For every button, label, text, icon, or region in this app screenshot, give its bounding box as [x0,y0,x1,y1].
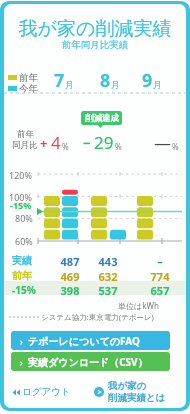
staticText: 実績ダウンロード（CSV） [28,355,148,369]
staticText: 120% [9,169,32,181]
staticText: 前年 [12,269,32,282]
staticText: 同月比 [12,140,38,151]
staticText: 774 [147,269,173,283]
staticText: › [20,356,23,368]
staticText: 4 [51,131,61,154]
button[interactable]: 削減達成 [81,111,122,125]
staticText: 100% [9,191,32,203]
button[interactable]: ログアウト [10,383,73,401]
staticText: 7 [54,68,65,93]
staticText: 469 [57,269,83,283]
staticText: 前年 [19,72,38,82]
staticText: 実績 [12,254,32,267]
staticText: 632 [95,269,121,283]
staticText: – [147,254,173,268]
staticText: -15% [10,199,32,211]
staticText: 削減達成 [85,113,119,124]
button[interactable]: › [11,331,170,350]
staticText: -15% [12,283,36,297]
staticText: 60% [15,235,33,247]
staticText: 月 [65,80,74,91]
staticText: 月 [153,80,162,91]
staticText: 削減実績とは [108,392,166,404]
button[interactable]: › [11,352,170,371]
staticText: 月 [111,80,120,91]
staticText: 398 [57,283,83,297]
staticText: 487 [57,254,83,268]
staticText: 我が家の削減実績 [4,17,186,41]
staticText: + [40,134,48,152]
staticText: % [62,141,69,152]
staticText: − [83,134,91,152]
staticText: システム協力:東京電力(テポーレ) [41,312,154,322]
staticText: 657 [147,283,173,297]
staticText: 443 [95,254,121,268]
staticText: % [115,141,122,152]
staticText: 8 [100,68,111,93]
staticText: ログアウト [22,386,71,398]
staticText: 単位はkWh [118,300,159,311]
staticText: › [20,335,23,347]
staticText: 我が家の [108,380,147,392]
staticText: 前年 [17,129,34,140]
staticText: % [172,141,179,152]
staticText: 前年同月比実績 [4,39,186,51]
staticText: テポーレについてのFAQ [28,334,140,348]
staticText: 今年 [19,83,38,93]
staticText: 537 [95,283,121,297]
staticText: 80% [15,212,33,224]
staticText: 29 [94,131,114,154]
staticText: 9 [142,68,153,93]
staticText: — [154,131,171,154]
button[interactable]: 我が家の [92,378,168,406]
